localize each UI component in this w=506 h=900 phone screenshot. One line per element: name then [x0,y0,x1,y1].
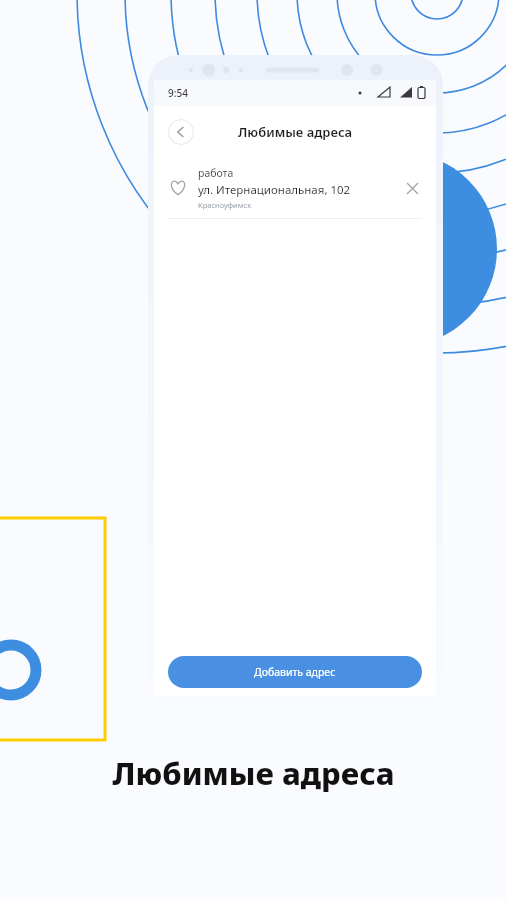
staticText: работа [198,166,234,180]
button[interactable]: Назад [168,119,194,145]
button[interactable]: Добавить адрес [168,656,422,688]
staticText: Красноуфимск [198,200,252,210]
staticText: Любимые адреса [238,123,353,141]
staticText: ул. Итернациональная, 102 [198,182,351,198]
staticText: 9:54 [168,86,188,100]
button[interactable]: Удалить [400,176,424,200]
button[interactable]: работа [154,158,436,218]
staticText: Добавить адрес [254,665,336,679]
staticText: Любимые адреса [112,752,395,794]
